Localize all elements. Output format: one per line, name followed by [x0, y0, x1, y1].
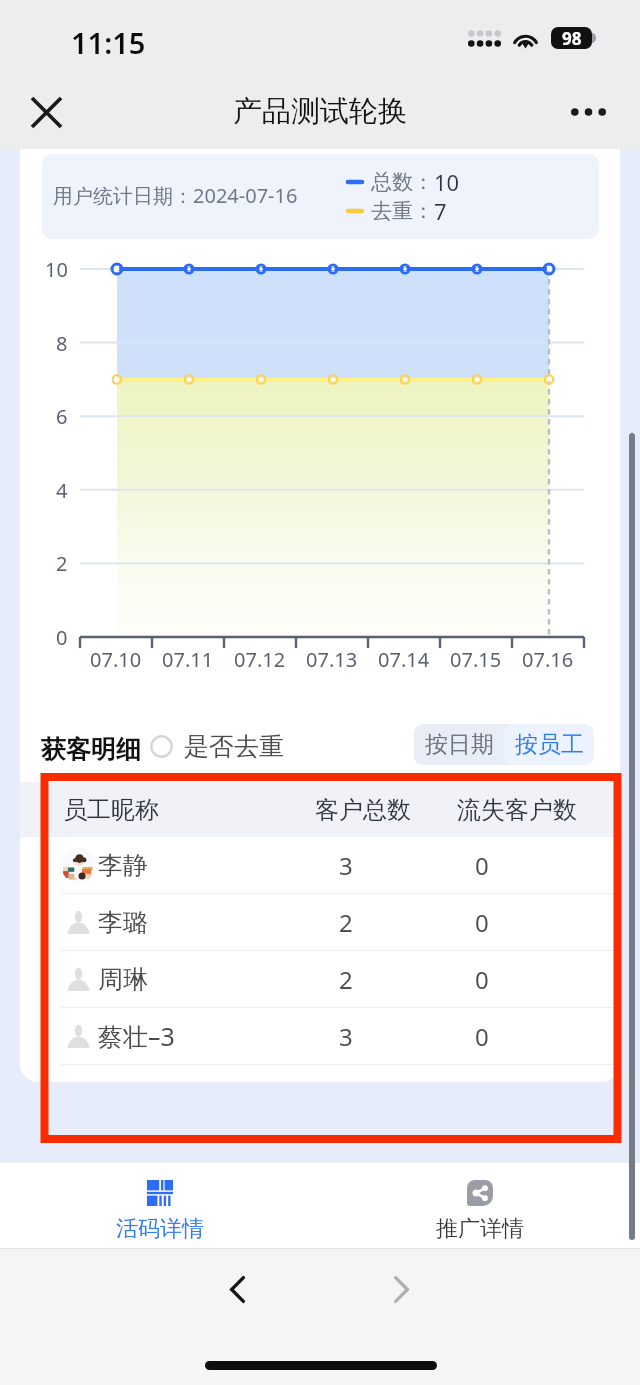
staticText: 客户总数 — [315, 795, 411, 825]
staticText: 8 — [56, 330, 68, 356]
staticText: 0 — [475, 906, 489, 939]
staticText: 07.16 — [522, 646, 574, 673]
staticText: 推广详情 — [436, 1215, 524, 1243]
staticText: 活码详情 — [116, 1215, 204, 1243]
staticText: 07.15 — [450, 646, 502, 673]
staticText: 07.14 — [378, 646, 430, 673]
staticText: 0 — [56, 624, 68, 650]
button[interactable]: 活码详情 — [60, 1163, 260, 1248]
staticText: 10 — [45, 256, 68, 282]
staticText: 2 — [339, 963, 353, 996]
staticText: 产品测试轮换 — [233, 93, 407, 130]
staticText: 用户统计日期：2024-07-16 — [53, 182, 298, 209]
staticText: 3 — [339, 849, 353, 882]
staticText: 0 — [475, 963, 489, 996]
button[interactable]: 周琳 — [20, 951, 620, 1007]
staticText: 去重： — [371, 198, 434, 224]
button[interactable]: 获客明细 — [41, 734, 141, 762]
button[interactable]: Back — [209, 1261, 265, 1317]
button[interactable]: 李璐 — [20, 894, 620, 950]
staticText: 获客明细 — [41, 734, 141, 762]
staticText: 0 — [475, 849, 489, 882]
staticText: 2 — [339, 906, 353, 939]
staticText: 07.13 — [306, 646, 358, 673]
staticText: 4 — [56, 477, 68, 503]
staticText: 李璐 — [98, 907, 148, 938]
staticText: 按员工 — [515, 730, 584, 759]
staticText: 总数： — [371, 169, 434, 195]
button[interactable]: 按日期 — [414, 724, 504, 765]
staticText: 10 — [434, 167, 460, 197]
staticText: 3 — [339, 1020, 353, 1053]
staticText: 李静 — [98, 850, 148, 881]
button[interactable]: 是否去重 — [150, 729, 284, 763]
staticText: 07.12 — [234, 646, 286, 673]
button[interactable]: Forward — [373, 1261, 429, 1317]
button[interactable]: 推广详情 — [380, 1163, 580, 1248]
button[interactable]: More options — [560, 84, 616, 140]
staticText: 11:15 — [71, 23, 146, 62]
staticText: 流失客户数 — [457, 795, 577, 825]
button[interactable]: Close — [18, 84, 74, 140]
staticText: 是否去重 — [184, 731, 284, 762]
staticText: 按日期 — [425, 730, 494, 759]
button[interactable]: 李静 — [20, 837, 620, 893]
staticText: 7 — [434, 196, 447, 226]
staticText: 07.10 — [90, 646, 142, 673]
staticText: 6 — [56, 403, 68, 429]
staticText: 0 — [475, 1020, 489, 1053]
staticText: 周琳 — [98, 964, 148, 995]
button[interactable]: 蔡壮–3 — [20, 1008, 620, 1064]
staticText: 07.11 — [162, 646, 214, 673]
staticText: 员工昵称 — [63, 795, 159, 825]
staticText: 蔡壮–3 — [98, 1019, 175, 1053]
staticText: 2 — [56, 550, 68, 576]
staticText: 98 — [562, 27, 582, 49]
button[interactable]: 按员工 — [504, 724, 594, 765]
